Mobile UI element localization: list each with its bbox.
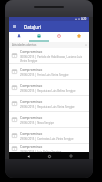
button[interactable]: More options xyxy=(83,42,89,48)
staticText: 29/06/2015 | Ferias Luis Vieira Sergipe xyxy=(20,73,69,77)
staticText: Atividades abertas xyxy=(12,43,37,47)
staticText: 29/06/2015 | Requisicao Luis Vieira Serg… xyxy=(20,105,75,109)
staticText: DataJuri xyxy=(24,24,41,30)
staticText: Compromisso xyxy=(20,115,43,120)
staticText: Compromisso xyxy=(20,49,43,54)
staticText: 29/06/2015 | Luis Belino Sergipe xyxy=(20,150,62,152)
button[interactable]: Compromisso xyxy=(9,112,89,128)
staticText: 29/06/2015 | Requisicao Luis Belino Serg… xyxy=(20,89,76,93)
button[interactable]: Compromisso xyxy=(9,96,89,112)
button[interactable]: Alertas xyxy=(69,32,89,40)
staticText: 4:20 xyxy=(81,17,87,21)
staticText: Compromisso xyxy=(20,99,43,104)
button[interactable]: Compromisso xyxy=(9,144,89,152)
button[interactable]: Compromisso xyxy=(9,64,89,80)
staticText: Compromisso xyxy=(20,131,43,136)
button[interactable]: Prazos xyxy=(49,32,69,40)
staticText: 29/06/2015 | Nova Sergipe xyxy=(20,121,54,125)
staticText: 29/06/2015 | Contratos Luis Vieira Sergi… xyxy=(20,137,74,141)
button[interactable]: Compromisso xyxy=(9,80,89,96)
button[interactable]: Agenda xyxy=(29,32,49,40)
button[interactable]: Compromisso xyxy=(9,128,89,144)
button[interactable]: Compromisso xyxy=(9,48,89,64)
button[interactable]: Recents xyxy=(68,153,74,159)
staticText: Compromisso xyxy=(20,144,43,149)
staticText: Compromisso xyxy=(20,83,43,88)
button[interactable]: Back xyxy=(25,153,31,159)
button[interactable]: Clientes xyxy=(9,32,29,40)
staticText: Compromisso xyxy=(20,67,43,72)
staticText: 30/06/2015 | Partido de Habilitacao, Luc… xyxy=(20,55,87,62)
button[interactable]: Open navigation menu xyxy=(9,21,20,32)
button[interactable]: Home xyxy=(46,153,52,159)
